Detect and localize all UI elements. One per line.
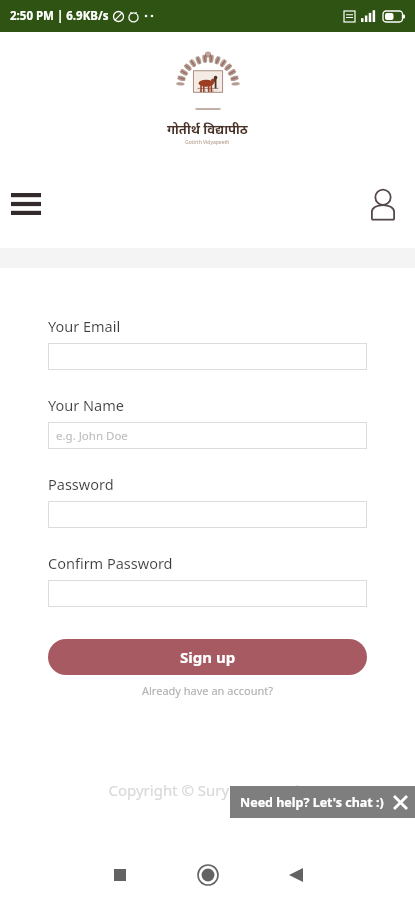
button[interactable] [48,343,367,370]
staticText: Password [48,474,114,494]
button[interactable]: Need help? Let's chat :) [230,786,415,818]
staticText: गोतीर्थ विद्यापीठ [167,120,248,138]
button[interactable]: Back [264,850,328,900]
staticText: Confirm Password [48,553,173,573]
button[interactable]: Account [361,182,405,226]
staticText: Gotirth Vidyapeeth [185,139,230,146]
button[interactable]: Home [176,850,240,900]
button[interactable]: Already have an account? [48,683,367,698]
staticText: Need help? Let's chat :) [240,794,384,811]
button[interactable]: Open navigation menu [4,182,48,226]
staticText: 2:50 PM | 6.9KB/s [10,8,109,24]
button[interactable] [48,501,367,528]
staticText: Copyright © Suryan Organic [0,780,415,800]
staticText: Already have an account? [142,683,273,698]
staticText: Your Email [48,316,121,336]
button[interactable]: Close chat [385,787,415,817]
button[interactable]: Recent apps [88,850,152,900]
staticText: Sign up [180,647,236,667]
button[interactable]: e.g. John Doe [48,422,367,449]
staticText: Your Name [48,395,124,415]
button[interactable]: Sign up [48,639,367,675]
staticText: e.g. John Doe [56,428,128,444]
button[interactable] [48,580,367,607]
